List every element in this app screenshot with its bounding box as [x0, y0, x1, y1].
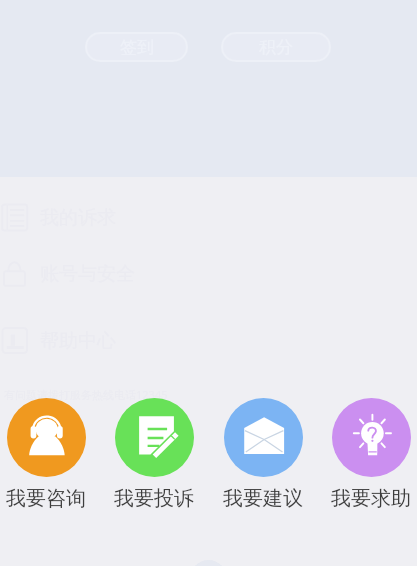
staticText: 我要咨询 [6, 486, 86, 511]
button[interactable]: 我要投诉 [112, 398, 196, 511]
staticText: 我要建议 [223, 486, 303, 511]
staticText: 我要求助 [331, 486, 411, 511]
staticText: 有问题请拨打服务热线电话12345 [4, 387, 168, 402]
button[interactable]: 我要咨询 [4, 398, 88, 511]
staticText: 我要投诉 [114, 486, 194, 511]
button[interactable]: 我要求助 [329, 398, 413, 511]
button[interactable]: 我要建议 [221, 398, 305, 511]
